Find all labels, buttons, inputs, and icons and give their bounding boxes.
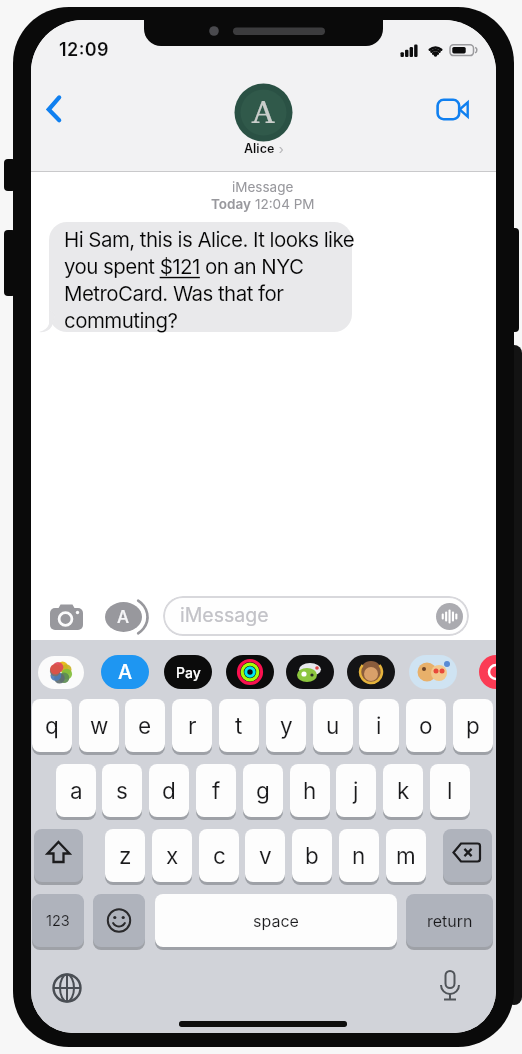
staticText: l [447, 777, 453, 804]
button[interactable]: o [406, 699, 446, 752]
button[interactable]: d [149, 764, 189, 817]
staticText: you spent $121 on an NYC [64, 254, 304, 279]
staticText: c [213, 842, 226, 869]
button[interactable]: l [430, 764, 470, 817]
staticText: iMessage [232, 179, 294, 195]
staticText: A [252, 92, 275, 134]
button[interactable]: u [313, 699, 353, 752]
button[interactable] [433, 968, 467, 1006]
button[interactable]: q [32, 699, 72, 752]
staticText: 123 [46, 912, 70, 930]
staticText: 12:04 PM [255, 196, 315, 212]
staticText: y [280, 712, 293, 739]
button[interactable]: return [406, 894, 493, 947]
button[interactable]: y [266, 699, 306, 752]
button[interactable] [226, 655, 274, 689]
button[interactable]: s [102, 764, 142, 817]
staticText: q [45, 712, 59, 739]
staticText: u [326, 712, 340, 739]
staticText: h [303, 777, 317, 804]
button[interactable]: e [125, 699, 165, 752]
staticText: a [70, 777, 83, 804]
staticText: f [212, 777, 221, 804]
staticText: g [256, 777, 270, 804]
button[interactable] [39, 90, 73, 128]
button[interactable] [34, 829, 83, 882]
button[interactable]: w [79, 699, 119, 752]
staticText: s [116, 777, 128, 804]
button[interactable]: Alice [226, 140, 301, 158]
button[interactable]: k [383, 764, 423, 817]
button[interactable]: A [101, 655, 149, 689]
staticText: n [352, 842, 366, 869]
button[interactable]: v [245, 829, 285, 882]
staticText: Pay [176, 664, 201, 681]
button[interactable]: Pay [164, 655, 212, 689]
staticText: p [466, 712, 480, 739]
button[interactable]: c [199, 829, 239, 882]
button[interactable] [479, 655, 496, 689]
button[interactable]: n [339, 829, 379, 882]
button[interactable]: iMessage [163, 596, 469, 636]
staticText: o [419, 712, 433, 739]
staticText: w [90, 712, 109, 739]
staticText: return [427, 911, 473, 930]
button[interactable]: i [359, 699, 399, 752]
button[interactable]: t [219, 699, 259, 752]
staticText: A [118, 660, 133, 684]
button[interactable] [49, 970, 85, 1006]
button[interactable]: g [243, 764, 283, 817]
button[interactable] [443, 829, 492, 882]
staticText: space [253, 911, 299, 930]
staticText: commuting? [64, 308, 178, 333]
staticText: Alice [244, 141, 275, 156]
button[interactable]: space [155, 894, 397, 947]
button[interactable] [347, 655, 395, 689]
button[interactable]: m [386, 829, 426, 882]
staticText: 12:09 [59, 39, 109, 61]
button[interactable]: r [172, 699, 212, 752]
staticText: › [275, 141, 284, 157]
button[interactable]: h [290, 764, 330, 817]
button[interactable] [434, 94, 472, 124]
button[interactable]: A [235, 84, 292, 141]
staticText: MetroCard. Was that for [64, 281, 284, 306]
button[interactable]: a [56, 764, 96, 817]
staticText: m [396, 842, 416, 869]
button[interactable]: p [453, 699, 493, 752]
button[interactable]: 123 [32, 894, 84, 947]
button[interactable]: x [152, 829, 192, 882]
staticText: r [188, 712, 197, 739]
button[interactable]: j [336, 764, 376, 817]
staticText: A [117, 607, 130, 628]
button[interactable]: A [103, 600, 149, 634]
staticText: Today [211, 196, 255, 212]
staticText: v [259, 842, 272, 869]
staticText: d [162, 777, 176, 804]
staticText: z [119, 842, 132, 869]
staticText: iMessage [180, 603, 269, 627]
staticText: j [353, 777, 359, 804]
staticText: x [166, 842, 179, 869]
button[interactable] [409, 655, 457, 689]
button[interactable] [93, 894, 145, 947]
staticText: Hi Sam, this is Alice. It looks like [64, 227, 355, 252]
staticText: k [397, 777, 410, 804]
button[interactable] [286, 655, 334, 689]
staticText: t [235, 712, 243, 739]
staticText: i [376, 712, 382, 739]
button[interactable] [38, 656, 84, 689]
button[interactable]: z [105, 829, 145, 882]
button[interactable]: b [292, 829, 332, 882]
staticText: e [138, 712, 152, 739]
button[interactable] [45, 600, 87, 636]
staticText: b [305, 842, 319, 869]
button[interactable]: f [196, 764, 236, 817]
